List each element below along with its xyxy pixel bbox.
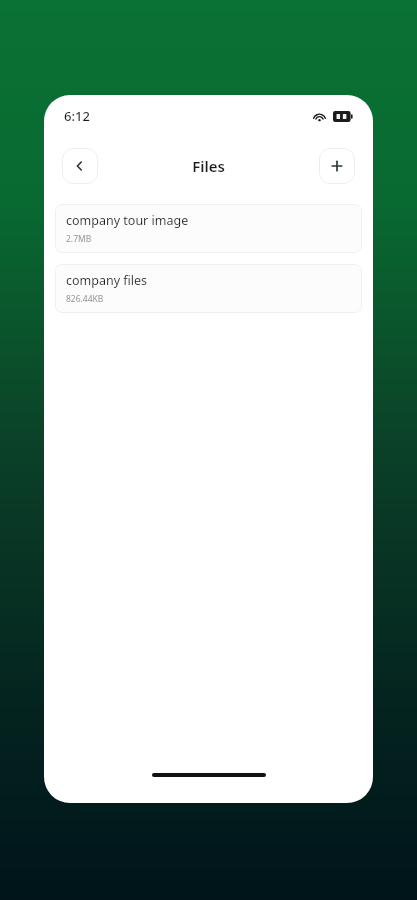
button[interactable]: Add	[319, 148, 355, 184]
staticText: 6:12	[64, 107, 90, 125]
button[interactable]: company tour image	[55, 204, 362, 253]
staticText: Files	[192, 156, 225, 176]
button[interactable]: company files	[55, 264, 362, 313]
staticText: company files	[66, 272, 148, 289]
staticText: 826.44KB	[66, 293, 104, 305]
staticText: company tour image	[66, 212, 189, 229]
staticText: 2.7MB	[66, 233, 92, 245]
button[interactable]: Back	[62, 148, 98, 184]
